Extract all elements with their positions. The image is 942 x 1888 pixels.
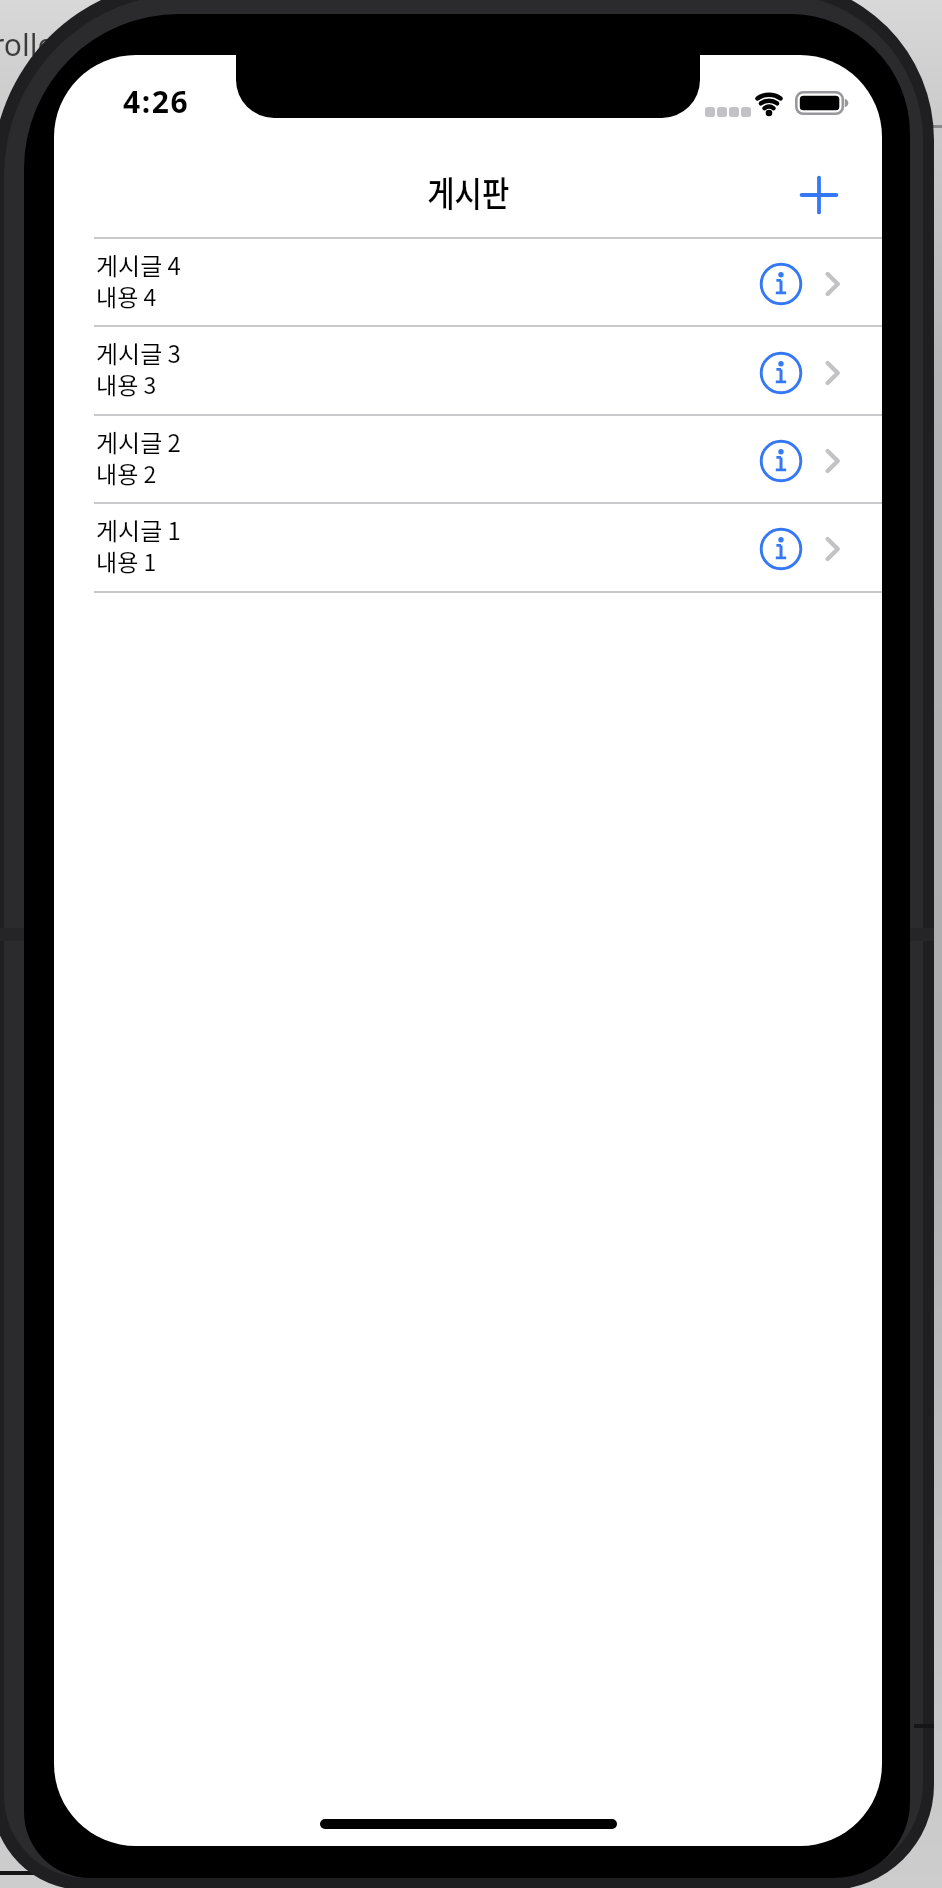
button[interactable]: 게시글 3 — [54, 325, 882, 414]
button[interactable]: 게시글 4 — [54, 237, 882, 326]
button[interactable]: 게시글 2 — [54, 414, 882, 502]
button[interactable] — [754, 346, 808, 400]
button[interactable] — [796, 172, 842, 218]
staticText: 게시글 1 — [96, 512, 181, 546]
staticText: 게시글 3 — [96, 335, 181, 369]
staticText: 내용 4 — [96, 279, 157, 311]
staticText: 내용 1 — [96, 544, 157, 576]
staticText: 내용 3 — [96, 367, 157, 399]
staticText: 내용 2 — [96, 456, 157, 488]
staticText: 4:26 — [123, 81, 190, 117]
staticText: 게시글 4 — [96, 247, 181, 281]
button[interactable] — [754, 257, 808, 311]
staticText: rolle — [0, 24, 55, 65]
button[interactable]: 게시글 1 — [54, 502, 882, 591]
button[interactable] — [754, 522, 808, 576]
staticText: 게시판 — [427, 166, 510, 214]
staticText: 게시글 2 — [96, 424, 181, 458]
button[interactable] — [754, 434, 808, 488]
